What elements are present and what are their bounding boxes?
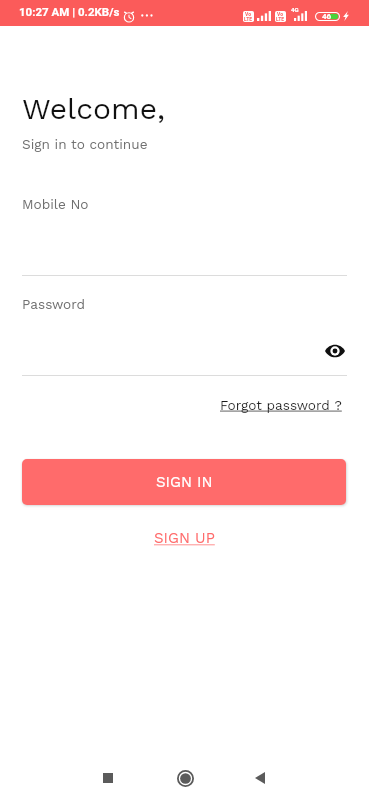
button[interactable]: Home — [165, 758, 205, 798]
staticText: Sign in to continue — [22, 136, 148, 152]
staticText: Mobile No — [22, 196, 89, 212]
staticText: 10:27 AM | 0.2KB/s — [19, 5, 120, 18]
staticText: Forgot password ? — [220, 397, 342, 413]
button[interactable]: Forgot password ? — [22, 397, 342, 413]
staticText: Vo — [245, 11, 251, 17]
button[interactable]: Recents — [88, 758, 128, 798]
staticText: Welcome, — [22, 91, 165, 126]
staticText: 46 — [322, 12, 332, 21]
button[interactable]: SIGN IN — [22, 459, 346, 505]
button[interactable]: Back — [240, 758, 280, 798]
staticText: LTE — [276, 16, 285, 22]
staticText: SIGN IN — [156, 473, 213, 491]
button[interactable]: SIGN UP — [154, 529, 215, 547]
staticText: 4G — [291, 6, 299, 13]
staticText: LTE — [244, 16, 253, 22]
button[interactable]: Show password — [321, 337, 349, 365]
staticText: Password — [22, 296, 86, 312]
staticText: Vo — [277, 11, 283, 17]
